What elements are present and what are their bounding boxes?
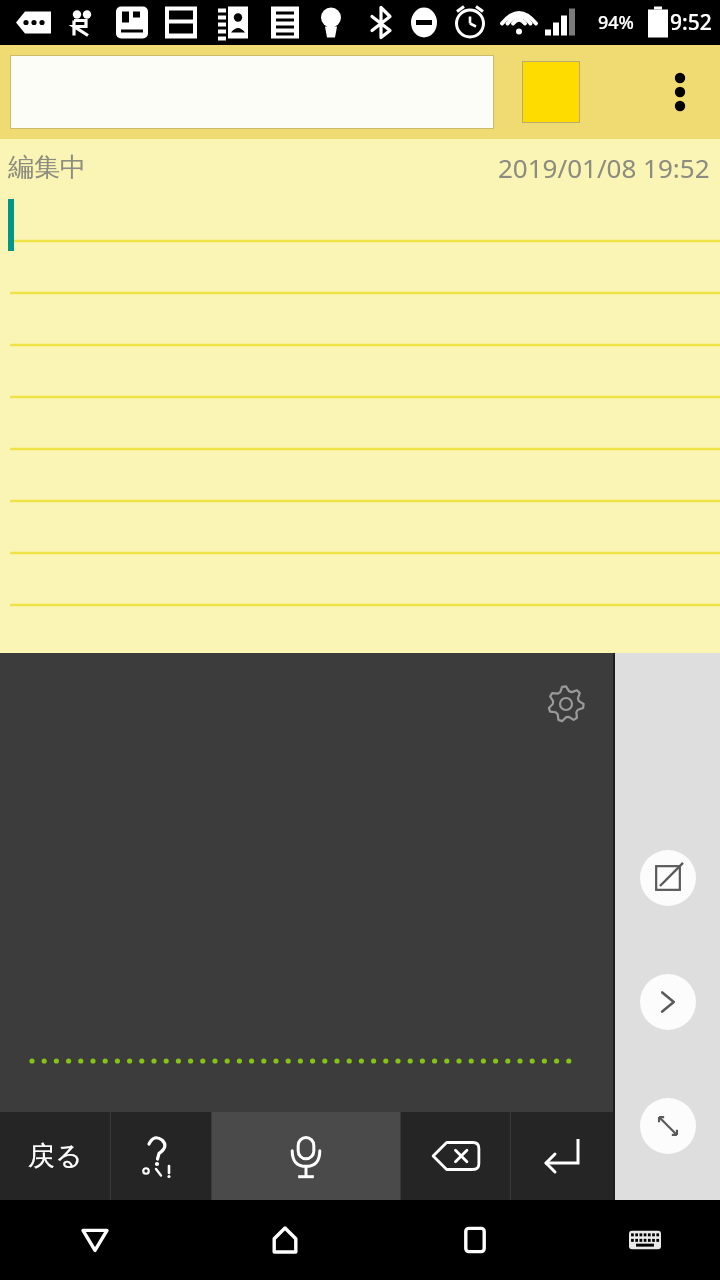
button[interactable]: 戻る	[0, 1112, 110, 1200]
staticText: 94%	[598, 10, 634, 35]
button[interactable]: Recents	[380, 1200, 570, 1280]
button[interactable]: Resize	[640, 1098, 696, 1154]
button[interactable]: Home	[190, 1200, 380, 1280]
staticText: 2019/01/08 19:52	[498, 150, 710, 185]
button[interactable]: Switch input method	[570, 1200, 720, 1280]
button[interactable]: Next	[640, 974, 696, 1030]
button[interactable]	[0, 195, 720, 653]
button[interactable]: Voice input	[212, 1112, 400, 1200]
button[interactable]: Note colour	[522, 61, 580, 123]
staticText: 戻る	[28, 1139, 83, 1173]
button[interactable]: Punctuation	[111, 1112, 211, 1200]
button[interactable]: Hide keyboard	[0, 1200, 190, 1280]
button[interactable]: More options	[640, 45, 720, 139]
button[interactable]	[10, 55, 494, 129]
button[interactable]: Enter	[511, 1112, 613, 1200]
staticText: 19:52	[658, 8, 712, 37]
button[interactable]: Edit	[640, 850, 696, 906]
button[interactable]: Input settings	[543, 681, 589, 727]
staticText: 編集中	[8, 151, 86, 184]
button[interactable]: Backspace	[401, 1112, 510, 1200]
